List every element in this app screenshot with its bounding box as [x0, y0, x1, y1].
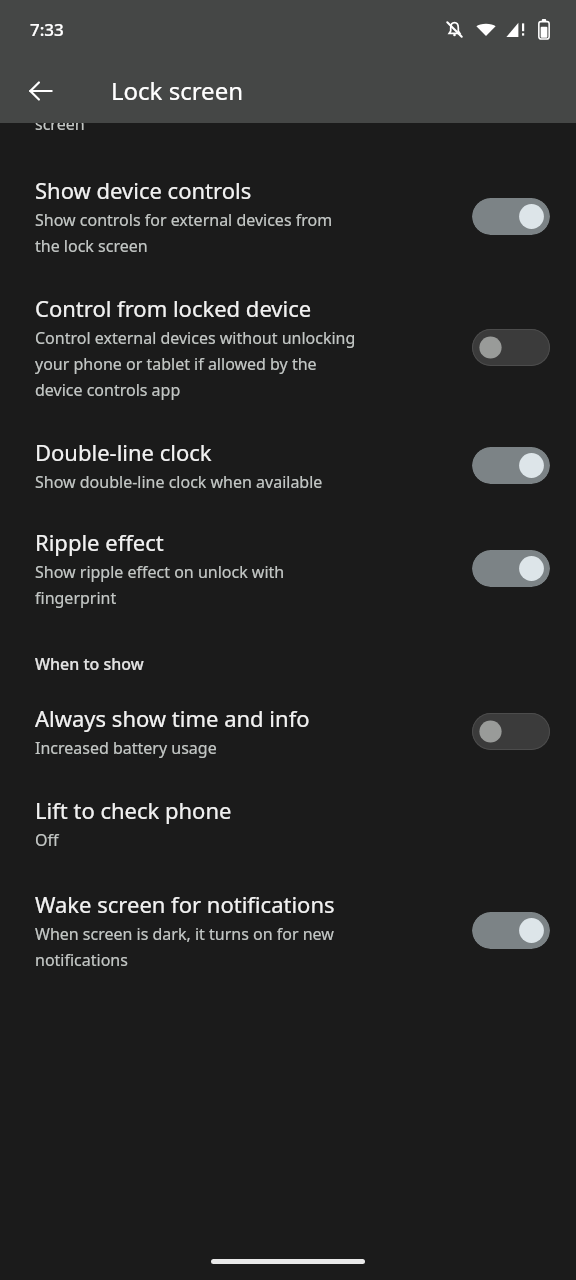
button[interactable]: Wake screen for notifications [0, 861, 576, 981]
staticText: Show device controls [35, 175, 252, 205]
staticText: Lift to check phone [35, 795, 232, 825]
staticText: 7:33 [30, 18, 64, 41]
staticText: When screen is dark, it turns on for new… [35, 923, 334, 971]
button[interactable]: On [472, 912, 550, 949]
button[interactable]: Off [472, 713, 550, 750]
staticText: Always show time and info [35, 703, 310, 733]
staticText: Control external devices without unlocki… [35, 327, 356, 401]
button[interactable]: Ripple effect [0, 503, 576, 619]
staticText: Increased battery usage [35, 737, 217, 759]
staticText: Allow access to QR scanner [35, 53, 315, 83]
button[interactable]: On [472, 198, 550, 235]
staticText: Show double-line clock when available [35, 471, 323, 493]
button[interactable]: Lift to check phone [0, 769, 576, 861]
button[interactable]: Off [472, 329, 550, 366]
staticText: Allow access to QR scanner from lock scr… [35, 87, 314, 135]
staticText: Lock screen [111, 74, 244, 107]
button[interactable]: On [472, 550, 550, 587]
staticText: When to show [35, 653, 144, 675]
button[interactable]: Back [13, 63, 69, 119]
button[interactable]: On [472, 447, 550, 484]
button[interactable]: Show device controls [0, 145, 576, 267]
staticText: Show ripple effect on unlock with finger… [35, 561, 285, 609]
staticText: Ripple effect [35, 527, 164, 557]
staticText: Wake screen for notifications [35, 889, 335, 919]
staticText: Show controls for external devices from … [35, 209, 333, 257]
staticText: Control from locked device [35, 293, 312, 323]
staticText: Double-line clock [35, 437, 212, 467]
staticText: Off [35, 829, 59, 851]
button[interactable]: Allow access to QR scanner [0, 43, 576, 145]
button[interactable]: Double-line clock [0, 411, 576, 503]
button[interactable]: Control from locked device [0, 267, 576, 411]
button[interactable]: Always show time and info [0, 679, 576, 769]
